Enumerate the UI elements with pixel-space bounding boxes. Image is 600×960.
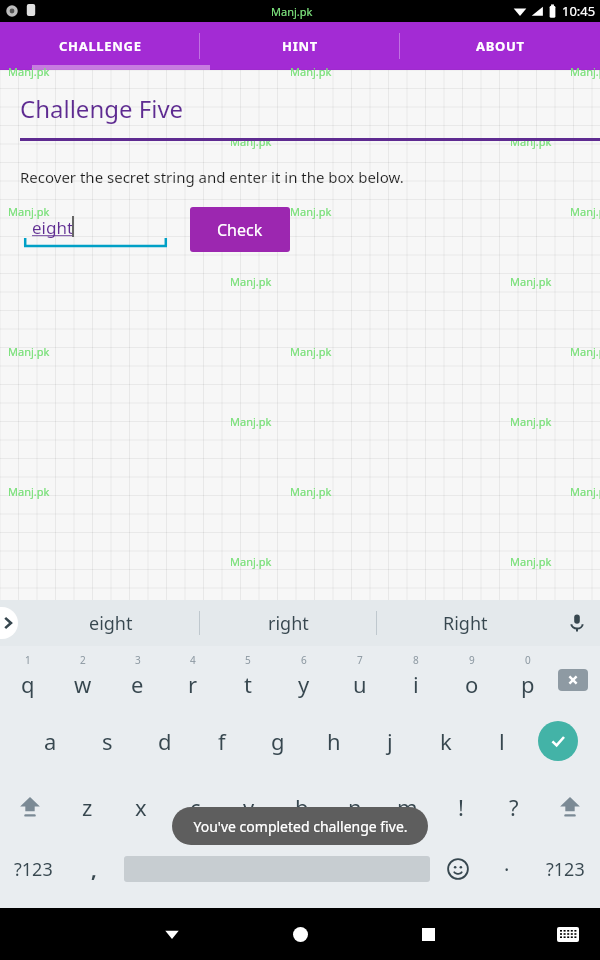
button[interactable]: n xyxy=(328,774,381,840)
staticText: Check xyxy=(217,219,263,241)
button[interactable]: ? xyxy=(487,774,540,840)
staticText: 9 xyxy=(469,653,475,667)
staticText: 5 xyxy=(245,653,251,667)
button[interactable]: 0 xyxy=(500,646,556,708)
button[interactable]: 8 xyxy=(388,646,444,708)
button[interactable]: 5 xyxy=(220,646,276,708)
staticText: y xyxy=(298,669,310,699)
button[interactable]: Space xyxy=(122,840,432,898)
button[interactable]: c xyxy=(168,774,222,840)
staticText: 2 xyxy=(80,653,86,667)
button[interactable]: 4 xyxy=(165,646,220,708)
staticText: ! xyxy=(458,792,464,822)
button[interactable]: Shift xyxy=(540,774,600,840)
button[interactable]: d xyxy=(136,708,193,774)
staticText: Manj.pk xyxy=(8,484,50,499)
button[interactable]: eight xyxy=(22,600,200,646)
staticText: Manj.pk xyxy=(230,134,272,149)
button[interactable]: right xyxy=(200,600,377,646)
staticText: o xyxy=(465,669,479,699)
button[interactable]: g xyxy=(250,708,306,774)
button[interactable]: a xyxy=(22,708,79,774)
button[interactable]: HINT xyxy=(200,22,400,70)
button[interactable]: Emoji xyxy=(432,840,484,898)
staticText: f xyxy=(218,726,226,756)
staticText: p xyxy=(521,669,535,699)
staticText: Right xyxy=(443,611,488,636)
button[interactable]: Voice input xyxy=(554,600,600,646)
staticText: Manj.pk xyxy=(8,64,50,79)
button[interactable]: Right xyxy=(377,600,554,646)
button[interactable]: k xyxy=(418,708,474,774)
staticText: Manj.pk xyxy=(290,204,332,219)
button[interactable]: More suggestions xyxy=(0,607,18,639)
button[interactable]: Recents xyxy=(406,912,450,956)
staticText: u xyxy=(353,669,367,699)
button[interactable]: ?123 xyxy=(530,840,600,898)
staticText: 8 xyxy=(413,653,419,667)
staticText: Manj.pk xyxy=(8,344,50,359)
button[interactable]: 1 xyxy=(0,646,55,708)
button[interactable]: 9 xyxy=(444,646,500,708)
button[interactable]: CHALLENGE xyxy=(0,22,200,70)
staticText: Recover the secret string and enter it i… xyxy=(20,167,404,187)
button[interactable]: l xyxy=(474,708,530,774)
staticText: 7 xyxy=(357,653,363,667)
staticText: 0 xyxy=(525,653,531,667)
staticText: Manj.pk xyxy=(290,484,332,499)
button[interactable]: Backspace xyxy=(558,669,588,691)
button[interactable]: s xyxy=(79,708,136,774)
button[interactable]: Home xyxy=(278,912,322,956)
staticText: v xyxy=(243,792,255,822)
button[interactable]: Check xyxy=(190,207,290,252)
staticText: Manj.pk xyxy=(290,344,332,359)
button[interactable]: h xyxy=(306,708,362,774)
button[interactable]: j xyxy=(362,708,418,774)
staticText: , xyxy=(91,856,97,883)
staticText: ABOUT xyxy=(476,37,525,55)
button[interactable]: m xyxy=(381,774,434,840)
button[interactable]: Shift xyxy=(0,774,60,840)
staticText: CHALLENGE xyxy=(59,37,142,55)
button[interactable]: 6 xyxy=(276,646,332,708)
button[interactable]: ABOUT xyxy=(400,22,600,70)
button[interactable]: b xyxy=(275,774,328,840)
button[interactable]: , xyxy=(66,840,122,898)
staticText: Manj.pk xyxy=(570,64,600,79)
staticText: Manj.pk xyxy=(570,344,600,359)
button[interactable]: Back xyxy=(150,912,194,956)
button[interactable]: 3 xyxy=(110,646,165,708)
staticText: n xyxy=(348,792,362,822)
staticText: i xyxy=(413,669,419,699)
button[interactable]: x xyxy=(114,774,168,840)
button[interactable]: Switch keyboard xyxy=(546,912,590,956)
button[interactable]: ?123 xyxy=(0,840,66,898)
button[interactable]: z xyxy=(60,774,114,840)
staticText: eight xyxy=(89,611,133,636)
button[interactable]: f xyxy=(193,708,250,774)
staticText: · xyxy=(504,856,510,883)
staticText: You've completed challenge five. xyxy=(193,817,408,836)
button[interactable]: 7 xyxy=(332,646,388,708)
staticText: ? xyxy=(509,792,519,822)
staticText: l xyxy=(499,726,505,756)
staticText: Manj.pk xyxy=(8,204,50,219)
staticText: HINT xyxy=(282,37,318,55)
staticText: c xyxy=(190,792,201,822)
button[interactable]: v xyxy=(222,774,275,840)
staticText: Manj.pk xyxy=(570,204,600,219)
button[interactable]: eight xyxy=(24,210,167,250)
staticText: j xyxy=(387,726,393,756)
staticText: Manj.pk xyxy=(510,554,552,569)
button[interactable]: · xyxy=(484,840,530,898)
staticText: Manj.pk xyxy=(230,274,272,289)
button[interactable]: Enter xyxy=(538,721,578,761)
staticText: Manj.pk xyxy=(510,274,552,289)
staticText: t xyxy=(244,669,252,699)
button[interactable]: ! xyxy=(434,774,487,840)
staticText: r xyxy=(188,669,198,699)
button[interactable]: 2 xyxy=(55,646,110,708)
staticText: ?123 xyxy=(546,857,585,882)
staticText: 4 xyxy=(190,653,196,667)
staticText: d xyxy=(158,726,172,756)
